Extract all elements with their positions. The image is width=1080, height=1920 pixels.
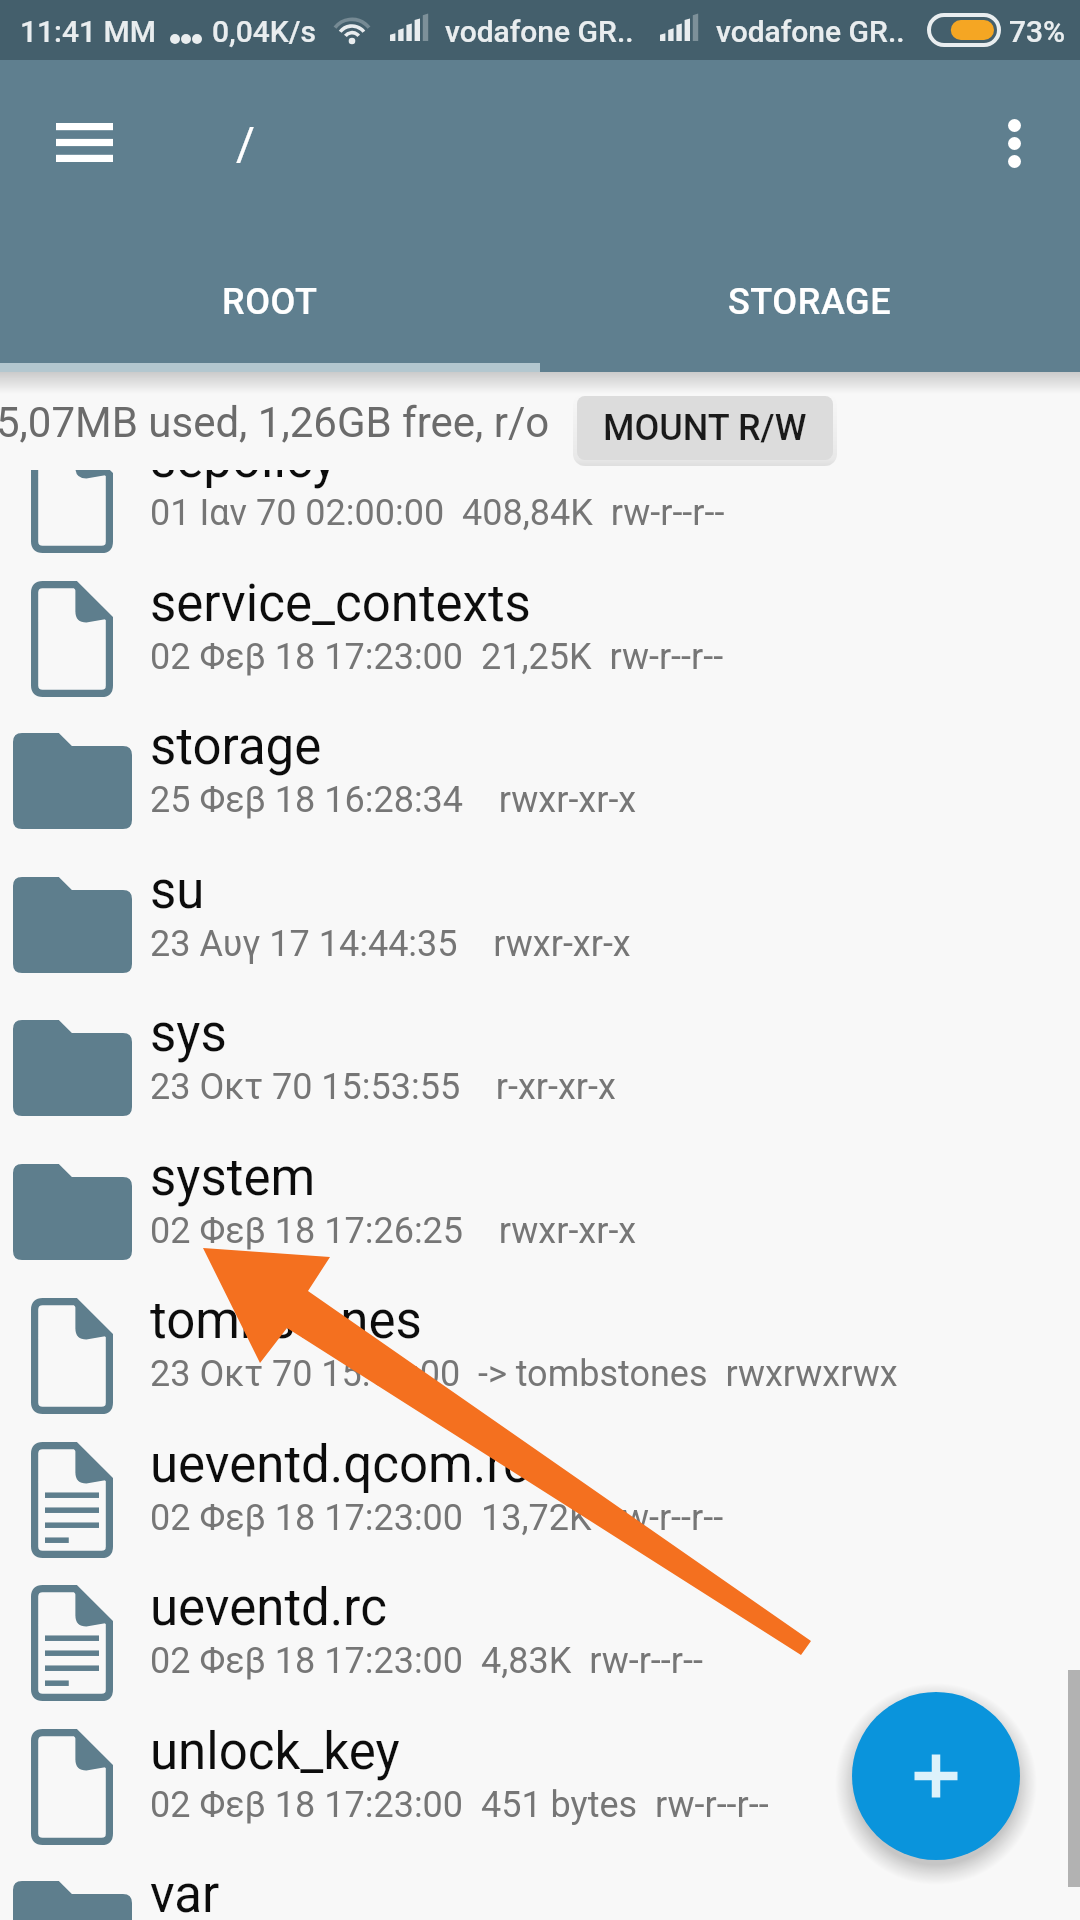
staticText: ROOT — [222, 281, 318, 323]
staticText: 01 Ιαν 70 02:00:00 408,84K rw-r--r-- — [150, 492, 725, 534]
staticText: unlock_key — [150, 1722, 400, 1782]
staticText: su — [150, 861, 205, 921]
button[interactable]: sepolicy — [0, 470, 1080, 554]
staticText: 5,07MB used, 1,26GB free, r/o — [0, 398, 550, 447]
staticText: 02 Φεβ 18 17:23:00 451 bytes rw-r--r-- — [150, 1784, 769, 1826]
button[interactable]: ROOT — [0, 271, 540, 332]
button[interactable]: ueventd.rc — [0, 1558, 1080, 1702]
staticText: MOUNT R/W — [603, 407, 807, 449]
button[interactable]: Open navigation drawer — [12, 81, 156, 203]
button[interactable]: ueventd.qcom.rc — [0, 1415, 1080, 1559]
button[interactable]: Add — [852, 1692, 1020, 1860]
button[interactable]: tombstones — [0, 1271, 1080, 1415]
button[interactable]: STORAGE — [540, 271, 1080, 332]
staticText: var — [150, 1865, 220, 1920]
staticText: 0,04K/s — [212, 14, 316, 49]
staticText: sys — [150, 1004, 227, 1064]
button[interactable]: su — [0, 841, 1080, 985]
staticText: 02 Φεβ 18 17:23:00 13,72K rw-r--r-- — [150, 1497, 724, 1539]
button[interactable]: MOUNT R/W — [577, 396, 833, 460]
staticText: service_contexts — [150, 574, 531, 634]
button[interactable]: service_contexts — [0, 554, 1080, 698]
staticText: vodafone GR.. — [716, 14, 905, 49]
staticText: sepolicy — [150, 470, 337, 490]
staticText: / — [236, 117, 255, 171]
staticText: ueventd.rc — [150, 1578, 387, 1638]
staticText: 11:41 MM — [20, 14, 157, 49]
button[interactable]: unlock_key — [0, 1702, 1080, 1846]
staticText: 02 Φεβ 18 17:26:25 rwxr-xr-x — [150, 1210, 637, 1252]
staticText: STORAGE — [728, 281, 892, 323]
staticText: system — [150, 1148, 316, 1208]
staticText: ueventd.qcom.rc — [150, 1435, 530, 1495]
staticText: 73% — [1009, 14, 1066, 49]
staticText: storage — [150, 717, 322, 777]
button[interactable]: storage — [0, 697, 1080, 841]
staticText: tombstones — [150, 1291, 422, 1351]
button[interactable]: system — [0, 1128, 1080, 1272]
staticText: 23 Αυγ 17 14:44:35 rwxr-xr-x — [150, 923, 631, 965]
button[interactable]: More options — [952, 83, 1076, 203]
staticText: 23 Οκτ 70 15:53:55 r-xr-xr-x — [150, 1066, 616, 1108]
button[interactable]: var — [0, 1845, 1080, 1920]
staticText: 25 Φεβ 18 16:28:34 rwxr-xr-x — [150, 779, 637, 821]
staticText: 23 Οκτ 70 15:53:00 -> tombstones rwxrwxr… — [150, 1353, 898, 1395]
staticText: 02 Φεβ 18 17:23:00 21,25K rw-r--r-- — [150, 636, 724, 678]
button[interactable]: sys — [0, 984, 1080, 1128]
staticText: vodafone GR.. — [445, 14, 634, 49]
staticText: 02 Φεβ 18 17:23:00 4,83K rw-r--r-- — [150, 1640, 703, 1682]
